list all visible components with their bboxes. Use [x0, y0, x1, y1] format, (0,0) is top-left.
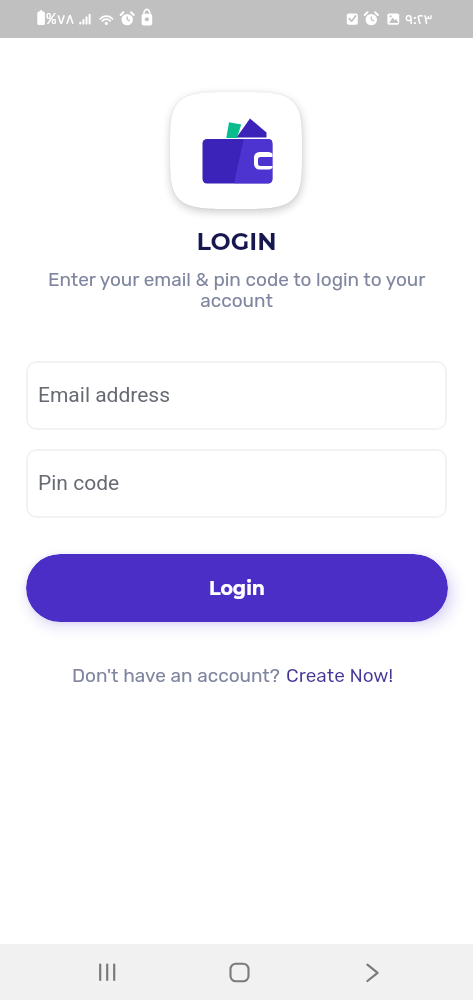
staticText: LOGIN	[196, 227, 277, 256]
staticText: Pin code	[38, 471, 120, 496]
button[interactable]: Login	[26, 554, 448, 622]
staticText: Enter your email & pin code to login to …	[22, 268, 451, 311]
staticText: Don't have an account?	[72, 664, 280, 687]
button[interactable]: Pin code	[26, 449, 447, 518]
staticText: %۷۸	[46, 11, 75, 28]
staticText: Login	[209, 577, 266, 600]
button[interactable]: Email address	[26, 361, 447, 430]
button[interactable]: Create Now!	[286, 664, 394, 687]
staticText: Email address	[38, 383, 171, 408]
button[interactable]: Recent apps	[78, 944, 135, 1000]
staticText: ۹:۲۳	[405, 11, 433, 28]
staticText: Create Now!	[286, 664, 394, 687]
button[interactable]: Home	[210, 944, 267, 1000]
button[interactable]: Back	[343, 944, 400, 1000]
